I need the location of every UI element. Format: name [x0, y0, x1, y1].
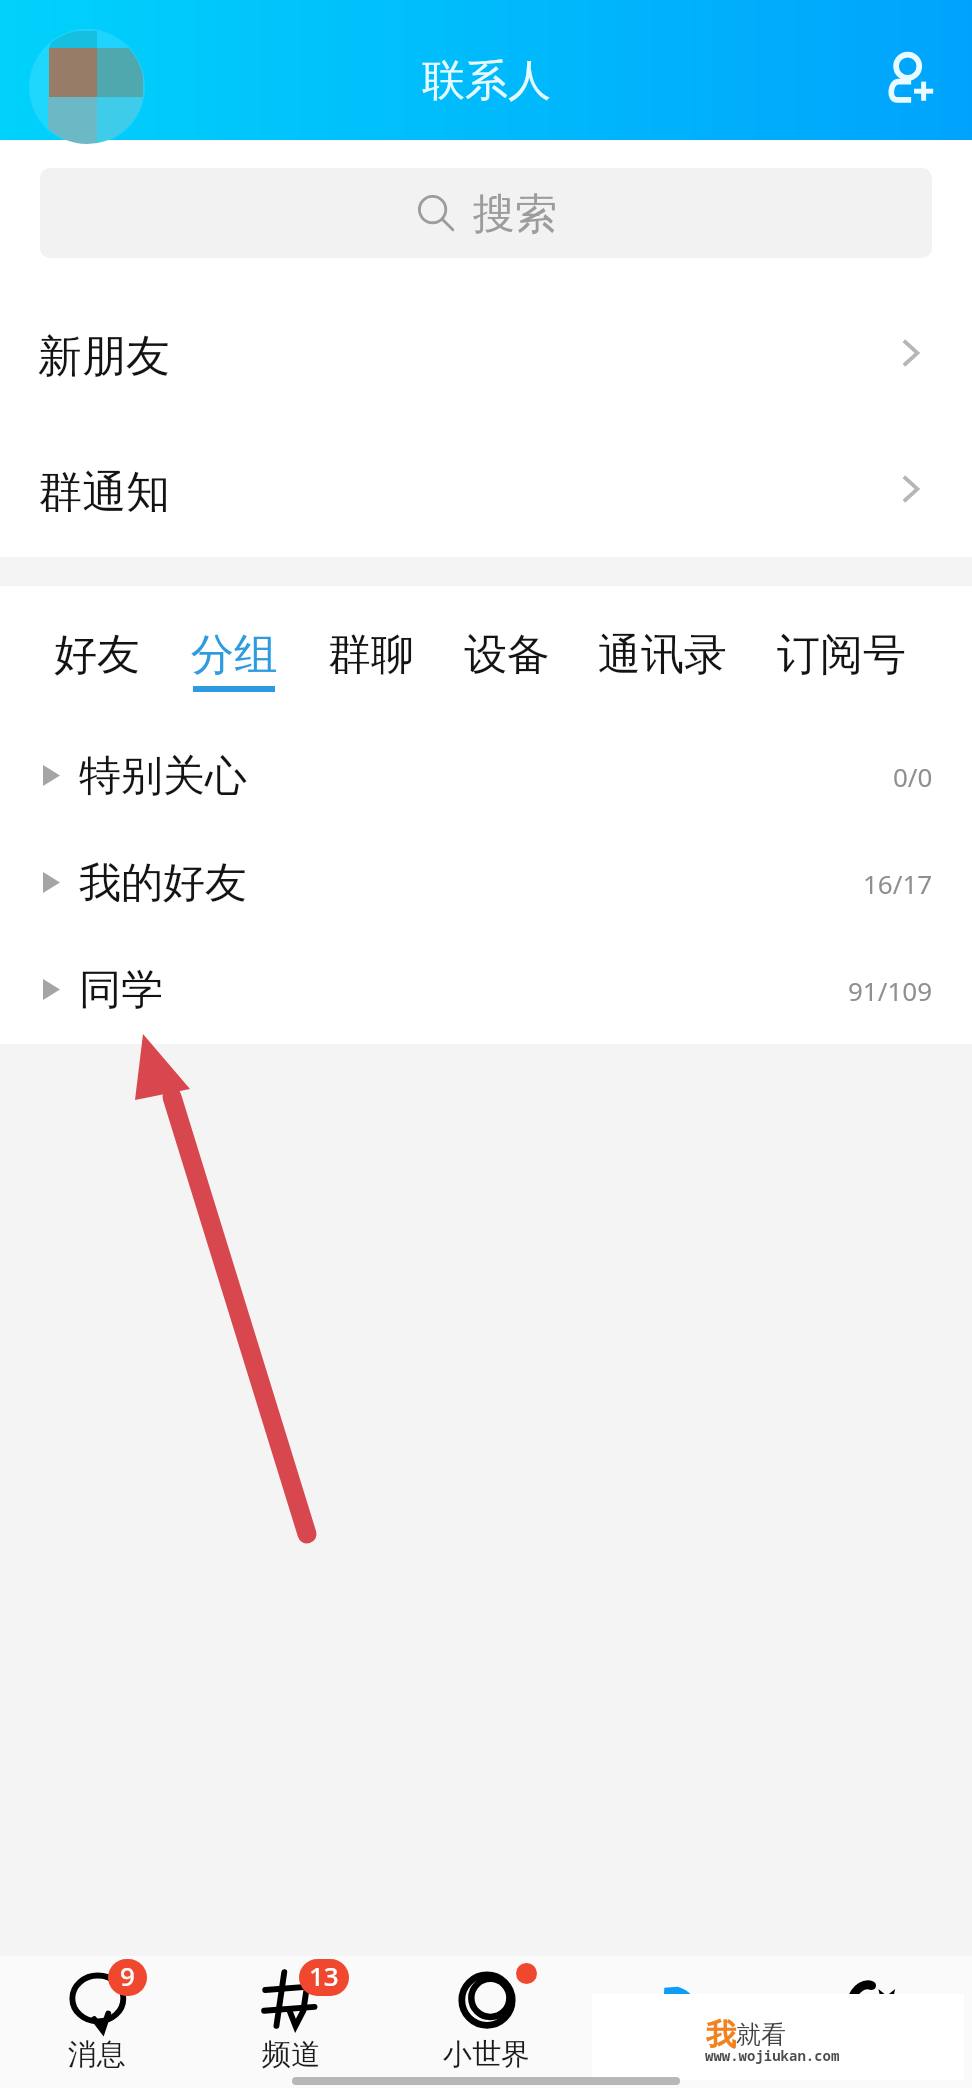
- staticText: 同学: [79, 964, 163, 1017]
- staticText: 搜索: [473, 188, 557, 241]
- button[interactable]: 同学: [0, 936, 972, 1043]
- staticText: 消息: [68, 2036, 126, 2073]
- button[interactable]: 13: [206, 1956, 376, 2074]
- staticText: 我: [706, 2016, 736, 2054]
- button[interactable]: Add contact: [870, 39, 950, 119]
- button[interactable]: Profile: [32, 30, 146, 144]
- staticText: 91/109: [848, 973, 933, 1008]
- button[interactable]: 设备: [454, 586, 559, 704]
- staticText: 分组: [191, 628, 277, 682]
- button[interactable]: 通讯录: [587, 586, 737, 704]
- staticText: 好友: [54, 628, 140, 682]
- staticText: 13: [309, 1959, 339, 1993]
- staticText: 频道: [262, 2036, 320, 2073]
- button[interactable]: 看点: [595, 1956, 765, 2074]
- button[interactable]: 群聊: [318, 586, 423, 704]
- staticText: 通讯录: [598, 628, 727, 682]
- staticText: 联系人: [422, 54, 551, 108]
- staticText: 16/17: [863, 866, 933, 901]
- staticText: 新朋友: [38, 329, 170, 384]
- button[interactable]: 搜索: [40, 168, 932, 258]
- button[interactable]: 我: [790, 1956, 960, 2074]
- button[interactable]: 群通知: [0, 420, 972, 557]
- button[interactable]: 好友: [44, 586, 149, 704]
- staticText: 小世界: [443, 2036, 530, 2073]
- staticText: 群通知: [38, 465, 170, 520]
- staticText: 9: [120, 1959, 135, 1993]
- button[interactable]: 分组: [181, 586, 286, 704]
- button[interactable]: 我的好友: [0, 829, 972, 936]
- button[interactable]: 新朋友: [0, 285, 972, 420]
- staticText: 特别关心: [79, 750, 247, 803]
- staticText: 我的好友: [79, 857, 247, 910]
- staticText: 0/0: [893, 759, 933, 794]
- staticText: 群聊: [328, 628, 414, 682]
- button[interactable]: 订阅号: [766, 586, 916, 704]
- button[interactable]: 小世界: [401, 1956, 571, 2074]
- staticText: 看点: [651, 2036, 709, 2073]
- staticText: 设备: [464, 628, 550, 682]
- staticText: www.wojiukan.com: [705, 2046, 840, 2065]
- button[interactable]: 9: [12, 1956, 182, 2074]
- button[interactable]: 特别关心: [0, 722, 972, 829]
- staticText: 就看: [736, 2019, 786, 2050]
- staticText: 订阅号: [777, 628, 906, 682]
